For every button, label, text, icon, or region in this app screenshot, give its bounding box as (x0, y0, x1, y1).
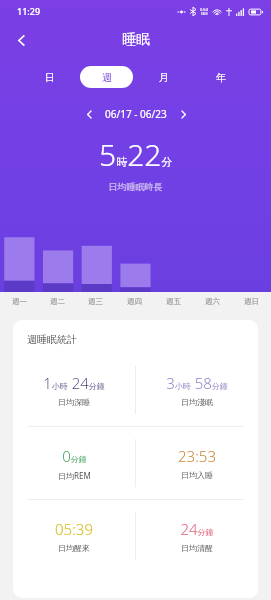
button[interactable]: 0分鐘 (13, 427, 135, 499)
button[interactable]: 24分鐘 (136, 500, 258, 572)
button[interactable]: Next week (173, 104, 193, 124)
staticText: 週一 (12, 297, 27, 306)
staticText: 日均清醒 (181, 543, 213, 553)
button[interactable]: 週 (80, 66, 133, 88)
staticText: 週 (102, 71, 112, 84)
staticText: 日均醒來 (58, 543, 90, 553)
staticText: 0.64 (200, 7, 208, 12)
staticText: KB/S (201, 12, 208, 16)
staticText: 睡眠 (122, 31, 150, 49)
button[interactable]: 23:53 (136, 427, 258, 499)
staticText: 週六 (205, 297, 220, 306)
staticText: 24分鐘 (180, 519, 214, 539)
staticText: 3小時 58分鐘 (166, 373, 228, 393)
button[interactable]: 月 (137, 66, 190, 88)
staticText: 週日 (244, 297, 259, 306)
staticText: 1小時 24分鐘 (43, 373, 105, 393)
button[interactable]: 1小時 24分鐘 (13, 354, 135, 426)
staticText: 日均入睡 (181, 470, 213, 480)
staticText: 週睡眠統計 (27, 333, 77, 346)
staticText: 11:29 (17, 5, 41, 17)
staticText: 日均深睡 (58, 397, 90, 407)
staticText: 05:39 (55, 519, 93, 539)
staticText: 日均睡眠時長 (0, 181, 271, 192)
staticText: 日 (45, 71, 55, 84)
staticText: 月 (159, 71, 169, 84)
staticText: 06/17 - 06/23 (105, 107, 167, 121)
staticText: 年 (216, 71, 226, 84)
button[interactable]: 3小時 58分鐘 (136, 354, 258, 426)
staticText: 週三 (88, 297, 103, 306)
button[interactable]: 05:39 (13, 500, 135, 572)
staticText: 0分鐘 (62, 446, 87, 466)
button[interactable]: Previous week (79, 104, 99, 124)
button[interactable]: 年 (194, 66, 247, 88)
staticText: 23:53 (178, 446, 216, 466)
staticText: 日均淺眠 (181, 397, 213, 407)
staticText: 週五 (166, 297, 181, 306)
button[interactable]: Back (5, 24, 37, 56)
staticText: 日均REM (58, 470, 91, 481)
staticText: 週二 (50, 297, 65, 306)
staticText: 週四 (127, 297, 142, 306)
button[interactable]: 日 (24, 66, 76, 88)
staticText: 5時22分 (99, 134, 173, 175)
